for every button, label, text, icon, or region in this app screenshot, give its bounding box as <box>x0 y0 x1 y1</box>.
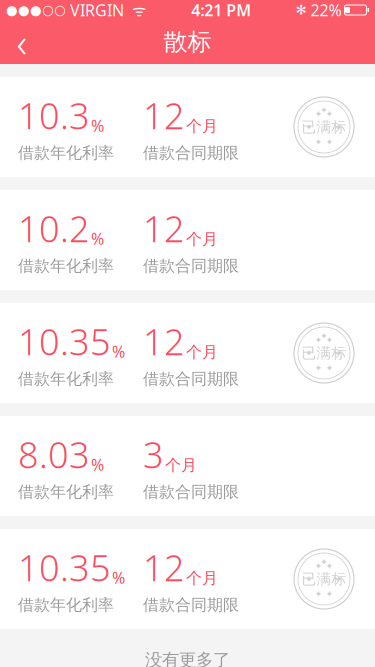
staticText: 8.03 <box>18 430 90 478</box>
staticText: ✦ <box>320 105 328 115</box>
staticText: 借款年化利率 <box>18 482 114 502</box>
button[interactable]: 10.3 <box>0 77 375 177</box>
staticText: 借款年化利率 <box>18 143 114 163</box>
staticText: 10.35 <box>18 317 111 365</box>
staticText: ‹ <box>16 15 27 68</box>
staticText: 借款合同期限 <box>143 256 239 276</box>
staticText: 借款年化利率 <box>18 369 114 389</box>
staticText: 4:21 PM <box>191 0 251 21</box>
staticText: 12 <box>143 317 185 365</box>
staticText: ✦ ✦ <box>314 335 333 345</box>
staticText: ✦ <box>335 574 343 584</box>
staticText: 借款合同期限 <box>143 143 239 163</box>
staticText: ✦ <box>305 574 313 584</box>
staticText: % <box>91 228 104 249</box>
staticText: 12 <box>143 543 185 591</box>
staticText: ●●●○○ <box>6 2 66 17</box>
staticText: 10.2 <box>18 204 90 252</box>
staticText: ✻ <box>295 2 306 17</box>
button[interactable]: Back <box>0 20 44 64</box>
staticText: ✦ ✦ <box>314 589 333 599</box>
staticText: 借款合同期限 <box>143 482 239 502</box>
staticText: 没有更多了 <box>145 649 230 667</box>
staticText: 22% <box>306 0 341 21</box>
staticText: 已满标 <box>301 344 346 362</box>
staticText: VIRGIN <box>66 0 124 21</box>
staticText: 个月 <box>186 568 218 588</box>
staticText: ✦ <box>320 557 328 567</box>
button[interactable]: 8.03 <box>0 416 375 516</box>
staticText: 3 <box>143 430 164 478</box>
staticText: % <box>91 115 104 136</box>
staticText: 借款合同期限 <box>143 595 239 615</box>
staticText: % <box>112 341 125 362</box>
staticText: 12 <box>143 204 185 252</box>
staticText: ✦ ✦ <box>314 363 333 373</box>
staticText: 个月 <box>165 455 197 475</box>
staticText: 个月 <box>186 229 218 249</box>
staticText: ✦ <box>320 331 328 341</box>
staticText: ✦ ✦ <box>314 137 333 147</box>
staticText: 借款年化利率 <box>18 256 114 276</box>
staticText: ✦ ✦ <box>314 561 333 571</box>
staticText: ✦ <box>305 348 313 358</box>
staticText: 12 <box>143 91 185 139</box>
staticText: ᯤ <box>124 0 147 21</box>
staticText: ✦ <box>335 122 343 132</box>
staticText: 个月 <box>186 342 218 362</box>
button[interactable]: 10.2 <box>0 190 375 290</box>
staticText: ✦ <box>335 348 343 358</box>
staticText: ✦ ✦ <box>314 109 333 119</box>
staticText: % <box>112 567 125 588</box>
staticText: 10.35 <box>18 543 111 591</box>
staticText: 已满标 <box>301 570 346 588</box>
button[interactable]: 10.35 <box>0 529 375 629</box>
staticText: 已满标 <box>301 118 346 136</box>
staticText: 10.3 <box>18 91 90 139</box>
staticText: ✦ <box>305 122 313 132</box>
staticText: % <box>91 454 104 475</box>
staticText: 散标 <box>163 27 211 57</box>
staticText: 个月 <box>186 116 218 136</box>
staticText: 借款年化利率 <box>18 595 114 615</box>
button[interactable]: 10.35 <box>0 303 375 403</box>
staticText: 借款合同期限 <box>143 369 239 389</box>
